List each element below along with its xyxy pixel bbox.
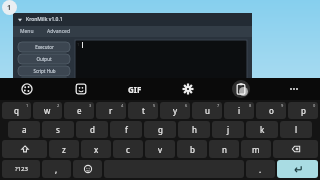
- button[interactable]: Notification badge: [2, 0, 17, 15]
- staticText: .: [259, 164, 262, 175]
- staticText: z: [62, 144, 66, 155]
- staticText: ,: [55, 164, 58, 175]
- button[interactable]: b: [177, 140, 207, 158]
- button[interactable]: a: [8, 121, 40, 138]
- button[interactable]: Settings: [161, 78, 214, 100]
- staticText: 5: [153, 103, 156, 108]
- button[interactable]: e: [64, 102, 94, 119]
- staticText: 7: [217, 103, 220, 108]
- staticText: 2: [57, 103, 60, 108]
- button[interactable]: j: [212, 121, 244, 138]
- button[interactable]: Stickers: [54, 78, 108, 100]
- staticText: k: [260, 124, 265, 135]
- button[interactable]: q: [2, 102, 31, 119]
- staticText: Output: [36, 56, 52, 62]
- staticText: h: [192, 124, 197, 135]
- staticText: i: [238, 105, 241, 116]
- button[interactable]: t: [128, 102, 158, 119]
- staticText: KronMilk v1.0.1: [26, 16, 63, 23]
- staticText: p: [301, 105, 306, 116]
- staticText: u: [205, 105, 210, 116]
- button[interactable]: Menu: [13, 28, 41, 35]
- button[interactable]: Output: [18, 54, 70, 64]
- staticText: b: [190, 144, 195, 155]
- staticText: m: [252, 144, 260, 155]
- staticText: 4: [121, 103, 124, 108]
- staticText: ?123: [15, 165, 28, 173]
- staticText: 1: [26, 103, 29, 108]
- staticText: Advanced: [47, 28, 71, 35]
- button[interactable]: ,: [42, 160, 71, 178]
- button[interactable]: o: [256, 102, 286, 119]
- button[interactable]: z: [49, 140, 79, 158]
- button[interactable]: s: [42, 121, 74, 138]
- staticText: 1: [77, 42, 80, 47]
- button[interactable]: y: [160, 102, 190, 119]
- button[interactable]: k: [246, 121, 278, 138]
- staticText: r: [109, 105, 113, 116]
- button[interactable]: Themes: [0, 78, 54, 100]
- staticText: w: [44, 105, 51, 116]
- staticText: 3: [89, 103, 92, 108]
- staticText: Script Hub: [33, 68, 56, 74]
- button[interactable]: Shift: [2, 140, 47, 158]
- button[interactable]: u: [192, 102, 222, 119]
- staticText: g: [158, 124, 163, 135]
- button[interactable]: x: [81, 140, 111, 158]
- button[interactable]: GIF: [108, 78, 161, 100]
- staticText: l: [295, 124, 298, 135]
- button[interactable]: h: [178, 121, 210, 138]
- button[interactable]: Script Hub: [18, 66, 70, 76]
- staticText: 1: [7, 3, 12, 13]
- staticText: y: [173, 105, 178, 116]
- button[interactable]: n: [209, 140, 239, 158]
- staticText: q: [14, 105, 19, 116]
- staticText: e: [77, 105, 82, 116]
- staticText: 6: [185, 103, 188, 108]
- staticText: n: [222, 144, 227, 155]
- button[interactable]: .: [246, 160, 275, 178]
- staticText: t: [142, 105, 145, 116]
- staticText: x: [94, 144, 99, 155]
- button[interactable]: Game Scripts: [18, 78, 70, 86]
- staticText: v: [158, 144, 163, 155]
- button[interactable]: Clipboard: [214, 78, 267, 100]
- staticText: a: [22, 124, 27, 135]
- button[interactable]: g: [144, 121, 176, 138]
- staticText: Menu: [20, 28, 34, 35]
- button[interactable]: d: [76, 121, 108, 138]
- staticText: f: [125, 124, 128, 135]
- staticText: 0: [313, 103, 316, 108]
- button[interactable]: Advanced: [41, 28, 77, 35]
- staticText: d: [90, 124, 95, 135]
- button[interactable]: More options: [267, 78, 320, 100]
- staticText: o: [269, 105, 274, 116]
- button[interactable]: Backspace: [273, 140, 318, 158]
- button[interactable]: w: [33, 102, 62, 119]
- staticText: 9: [281, 103, 284, 108]
- staticText: s: [56, 124, 60, 135]
- button[interactable]: v: [145, 140, 175, 158]
- staticText: Executor: [35, 44, 54, 50]
- button[interactable]: f: [110, 121, 142, 138]
- button[interactable]: Enter: [277, 160, 318, 178]
- button[interactable]: r: [96, 102, 126, 119]
- button[interactable]: Executor: [18, 42, 70, 52]
- button[interactable]: l: [280, 121, 312, 138]
- button[interactable]: i: [224, 102, 254, 119]
- staticText: 8: [249, 103, 252, 108]
- staticText: j: [227, 124, 230, 135]
- button[interactable]: p: [288, 102, 318, 119]
- staticText: Game Scripts: [30, 79, 58, 85]
- staticText: c: [126, 144, 130, 155]
- button[interactable]: m: [241, 140, 271, 158]
- button[interactable]: c: [113, 140, 143, 158]
- button[interactable]: Emoji: [73, 160, 102, 178]
- staticText: GIF: [128, 84, 142, 95]
- button[interactable]: ?123: [2, 160, 40, 178]
